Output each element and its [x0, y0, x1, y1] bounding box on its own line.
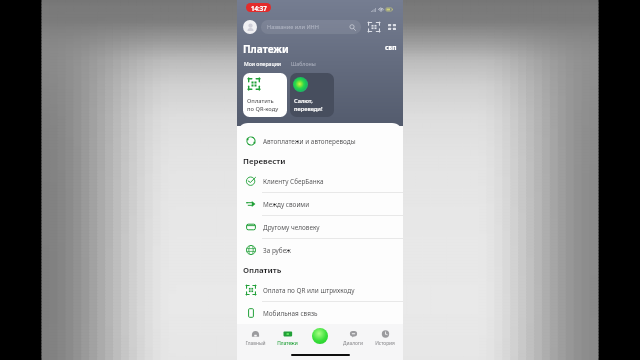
button[interactable]: Шаблоны	[291, 60, 316, 67]
button[interactable]: Автоплатежи и автопереводы	[237, 130, 403, 152]
button[interactable]: За рубеж	[237, 239, 403, 261]
button[interactable]: Диалоги	[338, 330, 368, 347]
staticText: Название или ИНН	[267, 23, 319, 31]
staticText: Платежи	[243, 42, 289, 56]
staticText: История	[375, 340, 395, 347]
button[interactable]: Assistant	[312, 328, 328, 344]
staticText: Главный	[245, 340, 266, 347]
button[interactable]: История	[370, 330, 400, 347]
staticText: Мои операции	[244, 60, 282, 67]
button[interactable]: Клиенту СберБанка	[237, 170, 403, 192]
button[interactable]: Салют, переведи!	[290, 73, 334, 117]
staticText: Перевести	[243, 156, 286, 167]
button[interactable]: Главный	[240, 330, 270, 347]
staticText: 14:37	[251, 4, 267, 12]
button[interactable]: Оплата по QR или штрихкоду	[237, 279, 403, 301]
button[interactable]: Profile	[243, 20, 257, 34]
button[interactable]: Оплатить по QR-коду	[243, 73, 287, 117]
button[interactable]: Мобильная связь	[237, 302, 403, 324]
staticText: Между своими	[263, 200, 310, 209]
staticText: Клиенту СберБанка	[263, 177, 324, 186]
staticText: Шаблоны	[291, 60, 316, 67]
staticText: СБП	[385, 44, 397, 51]
staticText: Платежи	[277, 340, 298, 347]
staticText: Другому человеку	[263, 223, 320, 232]
staticText: За рубеж	[263, 246, 291, 255]
staticText: Диалоги	[343, 340, 363, 347]
staticText: Оплата по QR или штрихкоду	[263, 286, 355, 295]
staticText: Автоплатежи и автопереводы	[263, 137, 356, 146]
staticText: Оплатить	[243, 265, 282, 276]
button[interactable]: All services	[388, 20, 396, 34]
button[interactable]: Другому человеку	[237, 216, 403, 238]
button[interactable]: Платежи	[272, 330, 302, 347]
button[interactable]: Scan QR code	[368, 20, 380, 34]
button[interactable]: Мои операции	[244, 60, 282, 67]
button[interactable]: Название или ИНН	[261, 20, 361, 34]
button[interactable]: Между своими	[237, 193, 403, 215]
staticText: Мобильная связь	[263, 309, 318, 318]
staticText: Оплатить по QR-коду	[247, 97, 279, 112]
button[interactable]: SBP	[385, 42, 397, 53]
staticText: Салют, переведи!	[294, 97, 323, 112]
